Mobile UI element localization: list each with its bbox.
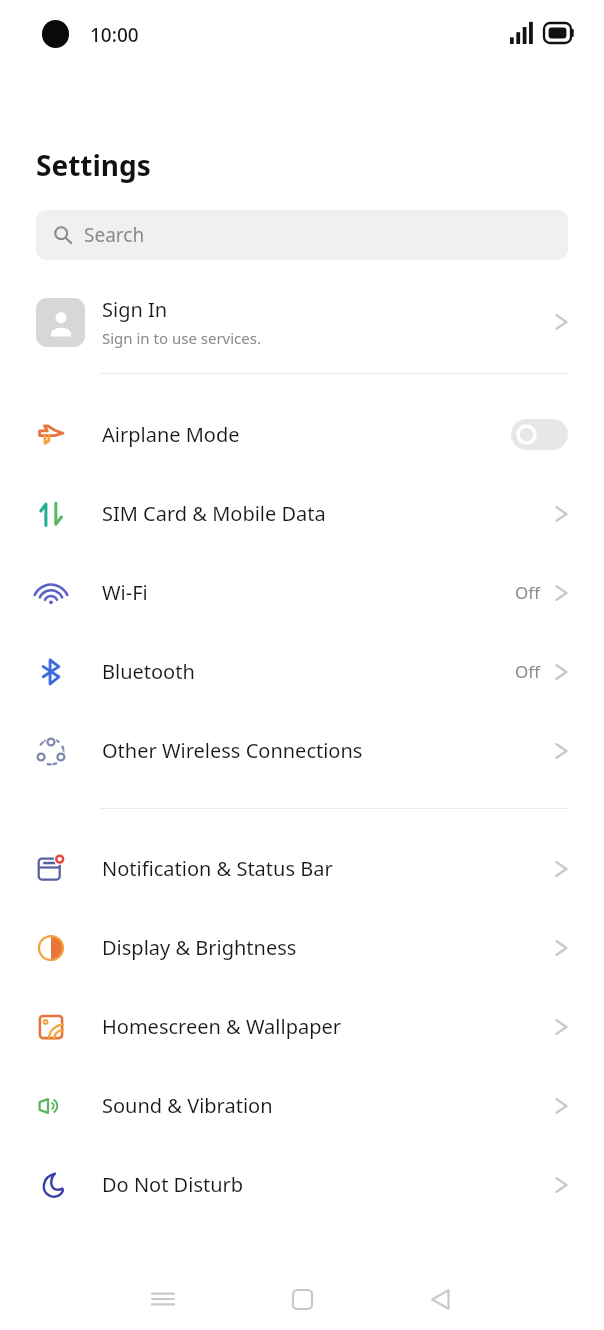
button[interactable]: Airplane Mode <box>0 395 604 474</box>
button[interactable]: Do Not Disturb <box>0 1145 604 1224</box>
staticText: Sign In <box>102 296 168 323</box>
button[interactable]: Homescreen & Wallpaper <box>0 987 604 1066</box>
button[interactable]: Airplane mode toggle, off <box>511 419 568 450</box>
staticText: Homescreen & Wallpaper <box>102 1013 555 1040</box>
staticText: Sign in to use services. <box>102 328 261 348</box>
staticText: Off <box>515 581 540 604</box>
button[interactable]: Notification & Status Bar <box>0 829 604 908</box>
staticText: SIM Card & Mobile Data <box>102 500 555 527</box>
staticText: Search <box>84 222 145 248</box>
staticText: Sound & Vibration <box>102 1092 555 1119</box>
staticText: Bluetooth <box>102 658 515 685</box>
staticText: Do Not Disturb <box>102 1171 555 1198</box>
button[interactable]: Recent apps <box>134 1268 192 1330</box>
button[interactable]: Wi-Fi <box>0 553 604 632</box>
staticText: Settings <box>36 146 151 184</box>
staticText: Wi-Fi <box>102 579 515 606</box>
button[interactable]: Other Wireless Connections <box>0 711 604 790</box>
button[interactable]: Search <box>36 210 568 260</box>
staticText: Display & Brightness <box>102 934 555 961</box>
button[interactable]: Back <box>411 1268 469 1330</box>
staticText: 10:00 <box>90 22 139 48</box>
button[interactable]: SIM Card & Mobile Data <box>0 474 604 553</box>
button[interactable]: Home <box>273 1268 331 1330</box>
button[interactable]: Sound & Vibration <box>0 1066 604 1145</box>
button[interactable]: Display & Brightness <box>0 908 604 987</box>
staticText: Off <box>515 660 540 683</box>
staticText: Other Wireless Connections <box>102 737 555 764</box>
button[interactable]: Sign In <box>0 282 604 362</box>
button[interactable]: Bluetooth <box>0 632 604 711</box>
staticText: Notification & Status Bar <box>102 855 555 882</box>
staticText: Airplane Mode <box>102 421 511 448</box>
